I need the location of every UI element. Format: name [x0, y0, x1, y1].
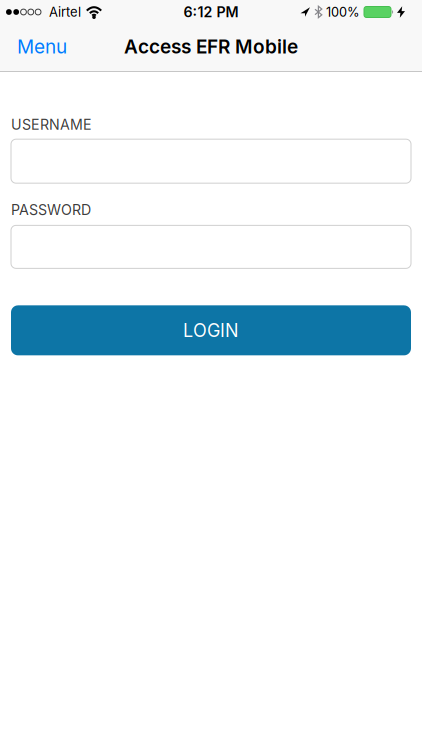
- staticText: USERNAME: [11, 116, 92, 133]
- staticText: Airtel: [49, 4, 81, 20]
- staticText: PASSWORD: [11, 201, 91, 218]
- button[interactable]: Username: [11, 139, 411, 183]
- staticText: Menu: [17, 35, 67, 58]
- button[interactable]: Password: [11, 225, 411, 268]
- staticText: Access EFR Mobile: [124, 35, 298, 58]
- staticText: LOGIN: [183, 319, 239, 341]
- button[interactable]: Menu: [17, 35, 67, 58]
- staticText: 100%: [326, 4, 360, 20]
- staticText: 6:12 PM: [183, 3, 238, 21]
- button[interactable]: LOGIN: [11, 305, 411, 355]
